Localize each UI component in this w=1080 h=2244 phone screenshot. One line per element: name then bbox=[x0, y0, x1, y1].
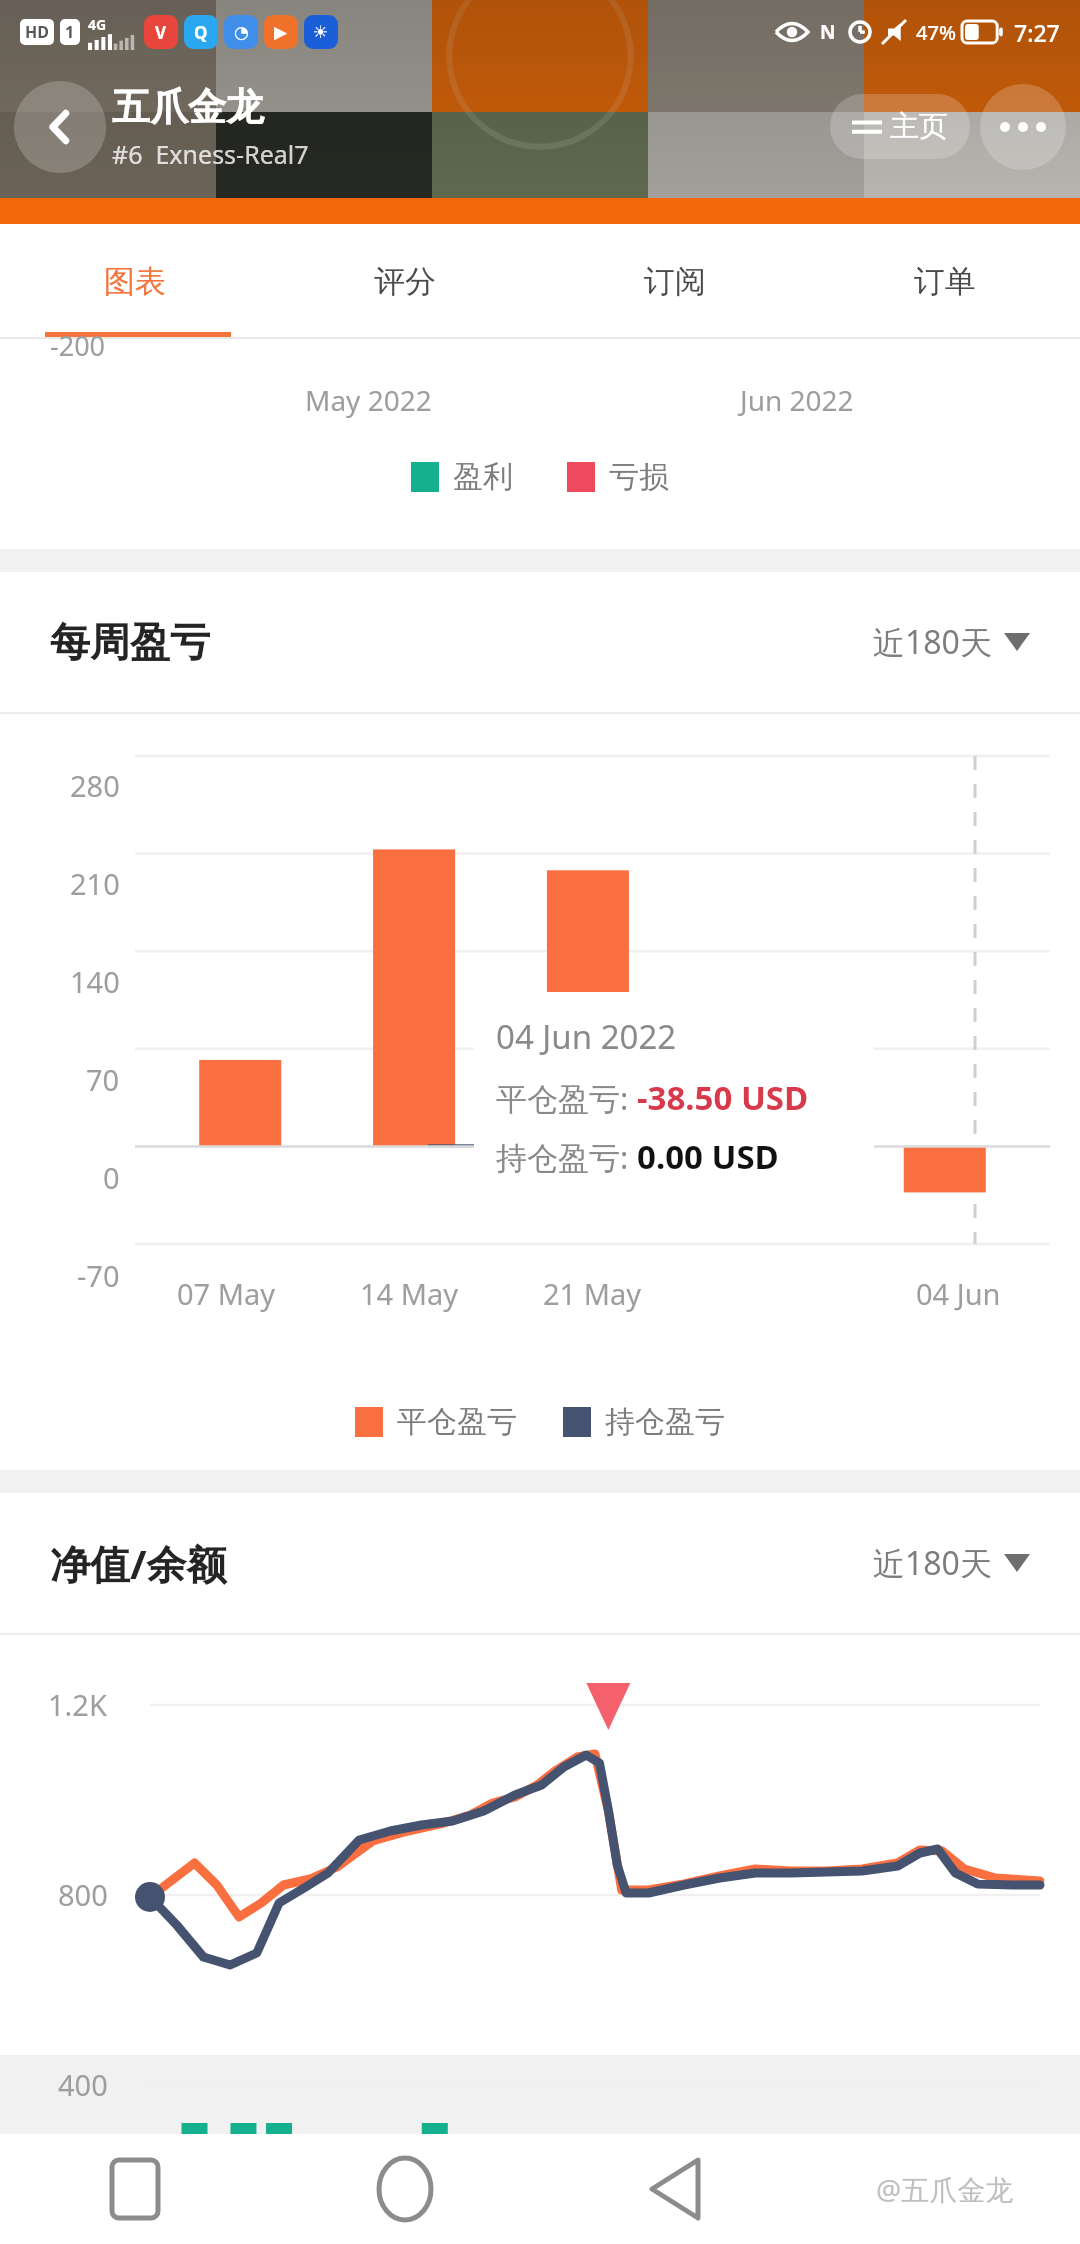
button[interactable]: 每周盈亏 bbox=[50, 572, 1030, 712]
staticText: 近180天 bbox=[873, 620, 992, 664]
staticText: 04 Jun bbox=[916, 1274, 1001, 1313]
staticText: 1.2K bbox=[48, 1685, 107, 1724]
staticText: 04 Jun 2022 bbox=[496, 1014, 677, 1059]
staticText: 21 May bbox=[543, 1274, 642, 1313]
staticText: 140 bbox=[70, 962, 120, 1001]
staticText: #6 Exness-Real7 bbox=[112, 137, 309, 171]
staticText: 210 bbox=[70, 864, 120, 903]
staticText: Jun 2022 bbox=[740, 381, 854, 419]
button[interactable]: 净值/余额 bbox=[50, 1493, 1030, 1633]
button[interactable]: 图表 bbox=[0, 224, 270, 339]
button[interactable]: 主页 bbox=[830, 94, 970, 159]
button[interactable]: Home bbox=[270, 2134, 540, 2244]
staticText: 07 May bbox=[177, 1274, 276, 1313]
button[interactable]: 订阅 bbox=[540, 224, 810, 339]
staticText: 0.00 USD bbox=[637, 1134, 779, 1179]
staticText: 平仓盈亏: bbox=[496, 1077, 637, 1119]
staticText: 亏损 bbox=[609, 458, 669, 496]
staticText: 持仓盈亏 bbox=[605, 1403, 725, 1441]
staticText: 14 May bbox=[360, 1274, 459, 1313]
staticText: 800 bbox=[58, 1875, 108, 1914]
staticText: V bbox=[155, 21, 167, 44]
staticText: 4G bbox=[88, 15, 107, 34]
staticText: 盈利 bbox=[453, 458, 513, 496]
staticText: -38.50 USD bbox=[637, 1075, 809, 1120]
staticText: 净值/余额 bbox=[50, 1536, 227, 1591]
button[interactable]: 评分 bbox=[270, 224, 540, 339]
staticText: 平仓盈亏 bbox=[397, 1403, 517, 1441]
staticText: 7:27 bbox=[1014, 17, 1060, 48]
staticText: 400 bbox=[58, 2065, 108, 2104]
staticText: HD bbox=[25, 21, 49, 43]
staticText: 评分 bbox=[374, 262, 436, 301]
staticText: N bbox=[820, 19, 836, 45]
staticText: Q bbox=[194, 21, 208, 44]
staticText: 图表 bbox=[104, 262, 166, 301]
staticText: 持仓盈亏: bbox=[496, 1136, 637, 1178]
staticText: 0 bbox=[103, 1158, 120, 1197]
staticText: 订单 bbox=[914, 262, 976, 301]
staticText: -200 bbox=[50, 327, 106, 364]
staticText: ▶ bbox=[274, 22, 288, 42]
staticText: @五爪金龙 bbox=[876, 2170, 1014, 2208]
staticText: ◔ bbox=[234, 22, 249, 42]
staticText: 1 bbox=[65, 21, 75, 43]
staticText: 五爪金龙 bbox=[112, 83, 264, 131]
button[interactable]: 订单 bbox=[810, 224, 1080, 339]
staticText: 近180天 bbox=[873, 1541, 992, 1585]
staticText: -70 bbox=[77, 1256, 120, 1295]
button[interactable]: Back bbox=[14, 81, 106, 173]
staticText: 280 bbox=[70, 766, 120, 805]
button[interactable]: Recents bbox=[0, 2134, 270, 2244]
staticText: 每周盈亏 bbox=[50, 617, 210, 667]
staticText: 47% bbox=[916, 19, 956, 46]
staticText: ☀ bbox=[313, 22, 329, 42]
staticText: 70 bbox=[86, 1060, 120, 1099]
button[interactable]: More options bbox=[980, 84, 1066, 170]
staticText: 主页 bbox=[890, 108, 948, 145]
staticText: 订阅 bbox=[644, 262, 706, 301]
button[interactable]: Back bbox=[540, 2134, 810, 2244]
staticText: May 2022 bbox=[305, 381, 432, 419]
